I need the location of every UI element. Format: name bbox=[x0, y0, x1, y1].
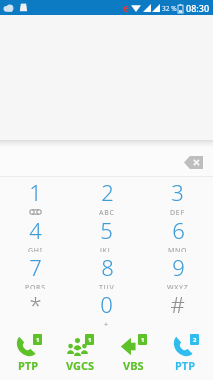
button[interactable]: 1 bbox=[0, 177, 71, 215]
staticText: PTP bbox=[18, 358, 39, 373]
button[interactable]: # bbox=[142, 289, 213, 326]
button[interactable]: 8 bbox=[71, 252, 142, 289]
staticText: DEF bbox=[170, 208, 185, 215]
button[interactable]: 3 bbox=[142, 177, 213, 215]
staticText: 2 bbox=[101, 177, 114, 207]
button[interactable]: 1 bbox=[55, 326, 105, 380]
staticText: PTP bbox=[175, 358, 196, 373]
staticText: e bbox=[123, 1, 129, 15]
button[interactable]: 9 bbox=[142, 252, 213, 289]
staticText: + bbox=[104, 320, 109, 326]
staticText: 8 bbox=[101, 252, 114, 282]
staticText: 1 bbox=[29, 177, 42, 207]
staticText: 3 bbox=[171, 177, 184, 207]
button[interactable]: * bbox=[0, 289, 71, 326]
staticText: MNO bbox=[168, 246, 188, 252]
staticText: 08:30 bbox=[186, 2, 210, 14]
staticText: JKL bbox=[100, 246, 113, 252]
staticText: VGCS bbox=[66, 358, 95, 373]
button[interactable]: 6 bbox=[142, 215, 213, 252]
button[interactable]: 0 bbox=[71, 289, 142, 326]
staticText: 0 bbox=[100, 289, 113, 319]
staticText: 32 % bbox=[162, 4, 177, 13]
staticText: 2 bbox=[193, 336, 197, 344]
button[interactable]: 5 bbox=[71, 215, 142, 252]
staticText: 6 bbox=[172, 215, 185, 245]
staticText: PQRS bbox=[25, 283, 46, 289]
staticText: GHI bbox=[28, 246, 43, 252]
staticText: 7 bbox=[29, 252, 42, 282]
button[interactable]: 2 bbox=[71, 177, 142, 215]
staticText: 5 bbox=[100, 215, 113, 245]
staticText: TUV bbox=[99, 283, 115, 289]
staticText: 1 bbox=[36, 336, 40, 344]
staticText: 1 bbox=[141, 336, 145, 344]
staticText: VBS bbox=[123, 358, 144, 373]
button[interactable]: 1 bbox=[108, 326, 158, 380]
staticText: 1 bbox=[88, 336, 92, 344]
staticText: # bbox=[170, 289, 185, 319]
button[interactable]: 1 bbox=[3, 326, 53, 380]
staticText: 9 bbox=[172, 252, 185, 282]
button[interactable]: Backspace bbox=[181, 152, 205, 172]
staticText: ABC bbox=[99, 208, 115, 215]
button[interactable]: 7 bbox=[0, 252, 71, 289]
button[interactable]: 4 bbox=[0, 215, 71, 252]
button[interactable]: 2 bbox=[160, 326, 210, 380]
staticText: WXYZ bbox=[167, 283, 189, 289]
staticText: * bbox=[29, 289, 42, 319]
staticText: 4 bbox=[29, 215, 42, 245]
